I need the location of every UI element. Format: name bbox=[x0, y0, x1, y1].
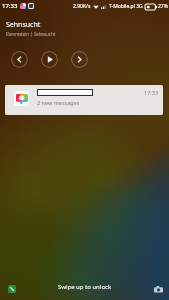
staticText: 17:33 bbox=[144, 89, 159, 96]
staticText: 27% bbox=[158, 3, 168, 10]
button[interactable]: 2 new messages bbox=[5, 85, 163, 115]
staticText: T-Mobile.pl 3G bbox=[109, 3, 143, 10]
button[interactable]: Phone bbox=[8, 285, 16, 293]
button[interactable]: Next bbox=[71, 51, 88, 68]
staticText: Sehnsucht bbox=[6, 20, 41, 30]
staticText: 2.90K/s bbox=[73, 3, 91, 10]
button[interactable]: Camera bbox=[154, 285, 163, 294]
staticText: Rammstein | Sehnsucht bbox=[6, 31, 56, 37]
staticText: 2 new messages bbox=[37, 99, 80, 106]
button[interactable]: Previous bbox=[11, 51, 28, 68]
button[interactable]: Play bbox=[41, 51, 58, 68]
staticText: 17:33 bbox=[2, 2, 18, 10]
staticText: Swipe up to unlock bbox=[0, 283, 169, 291]
